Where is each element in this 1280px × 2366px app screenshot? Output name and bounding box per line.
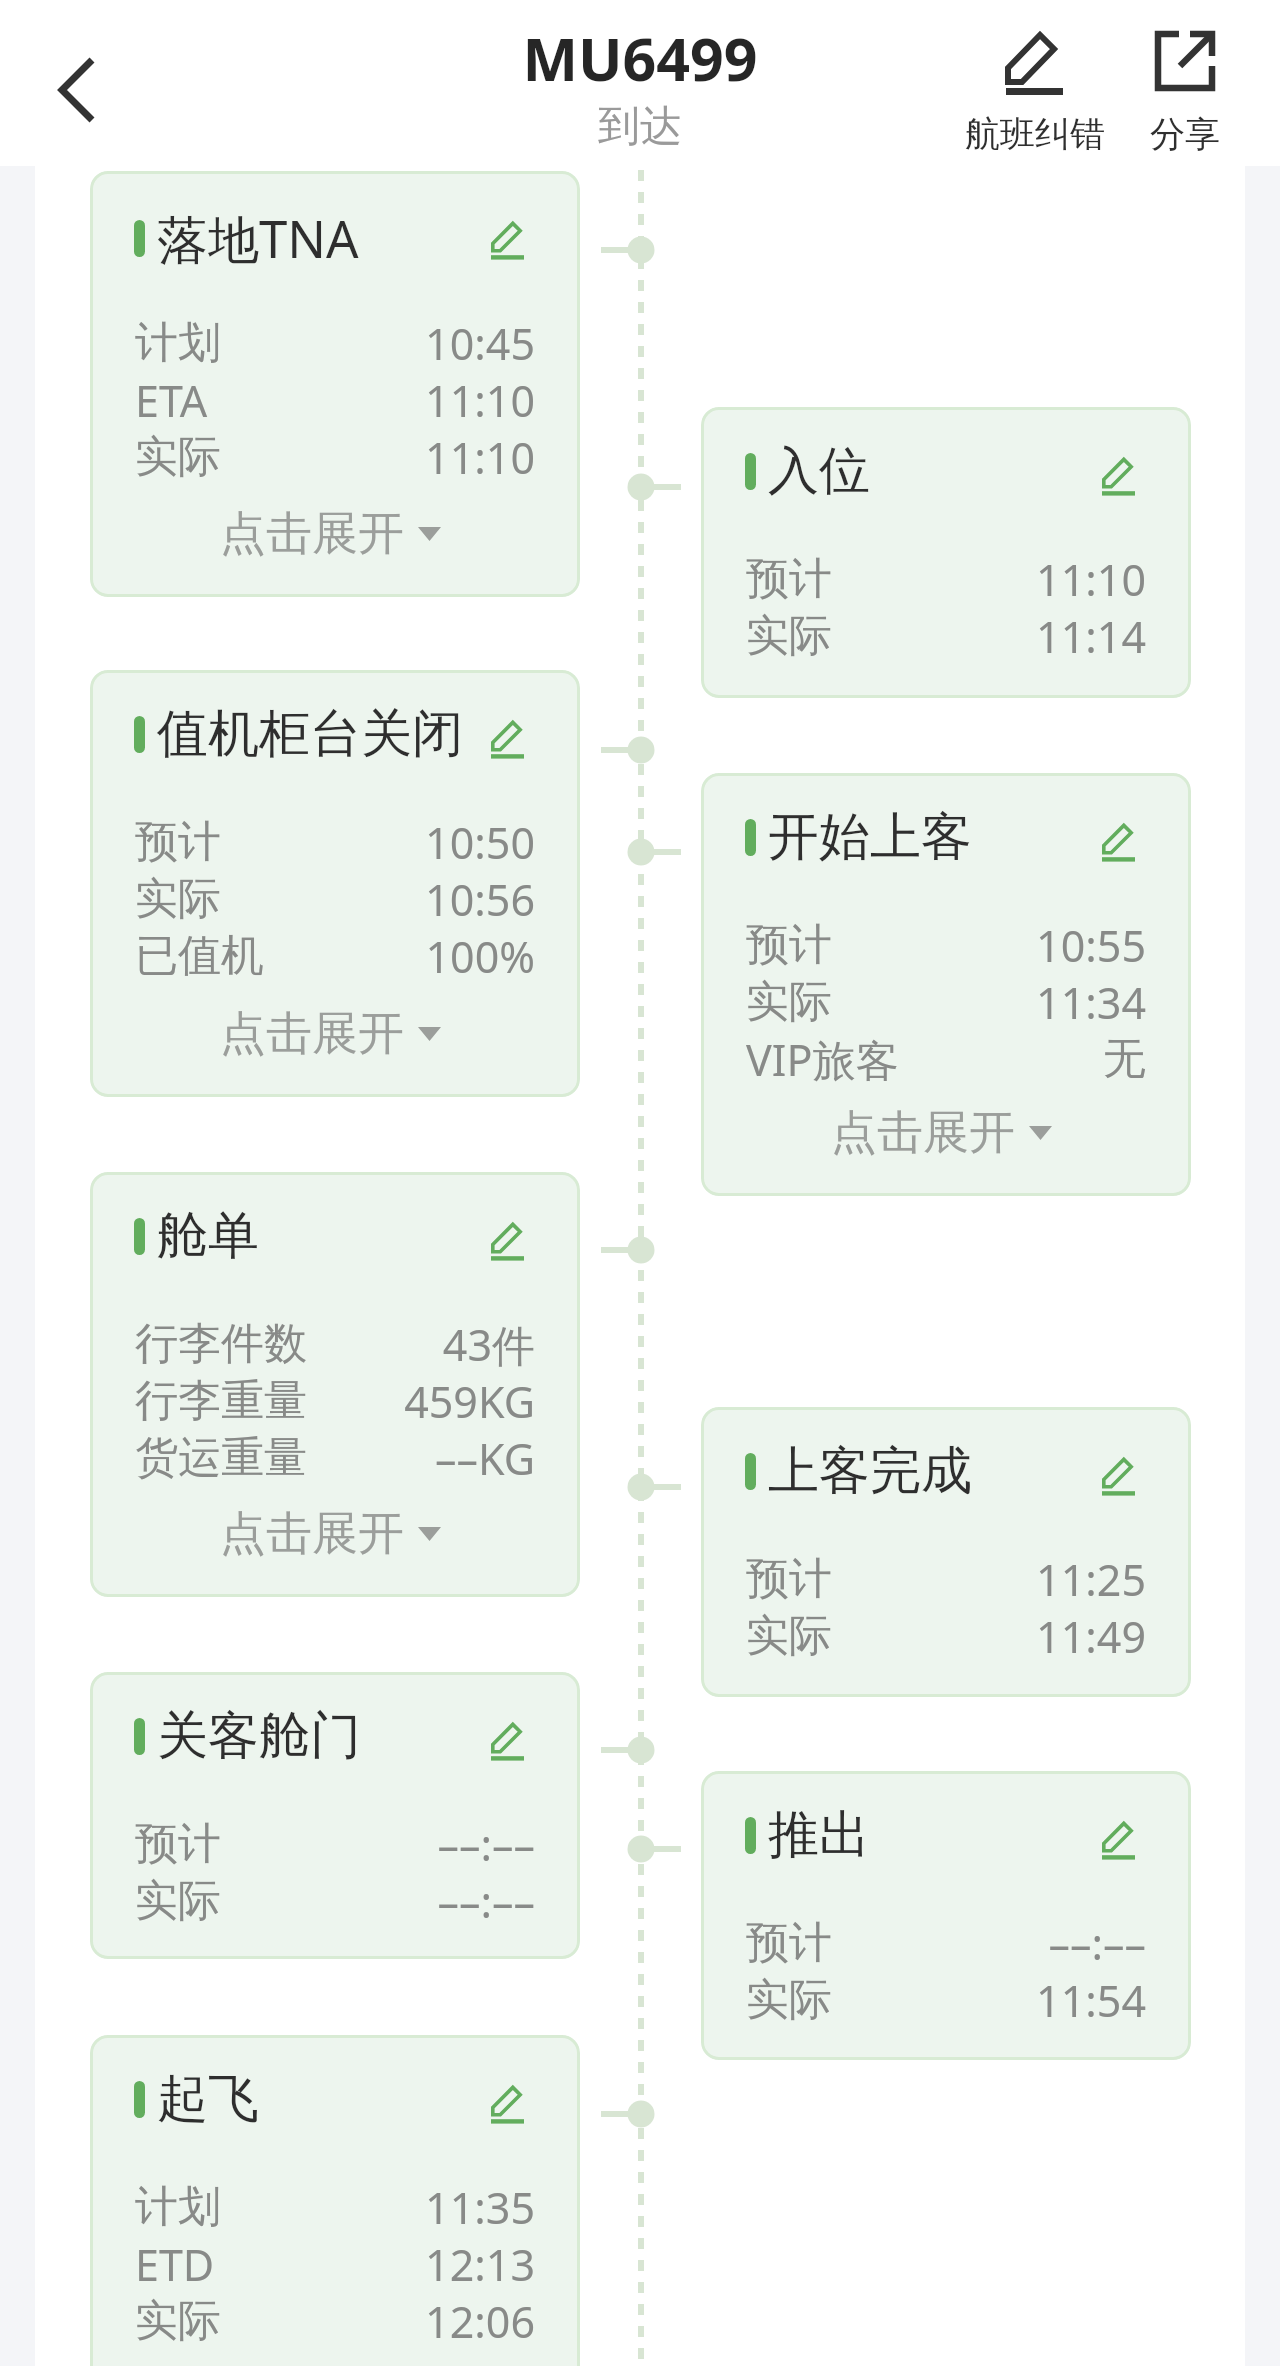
button[interactable]: 编辑 [1094, 1451, 1142, 1499]
staticText: 11:34 [840, 973, 1146, 1030]
staticText: 入位 [768, 439, 870, 503]
staticText: ––KG [315, 1429, 535, 1486]
staticText: 计划 [135, 2180, 221, 2234]
button[interactable]: 编辑 [483, 1716, 531, 1764]
staticText: 11:10 [216, 371, 535, 428]
button[interactable]: 编辑 [483, 1216, 531, 1264]
staticText: 10:50 [229, 813, 535, 870]
button[interactable]: 开始上客 [701, 773, 1191, 1196]
staticText: 行李件数 [135, 1317, 307, 1371]
staticText: 点击展开 [831, 1104, 1015, 1162]
button[interactable]: 编辑 [1094, 817, 1142, 865]
staticText: 100% [272, 927, 535, 984]
staticText: 预计 [135, 1817, 221, 1871]
staticText: 点击展开 [220, 1005, 404, 1063]
staticText: 上客完成 [768, 1439, 972, 1503]
staticText: 无 [907, 1032, 1146, 1086]
staticText: ––:–– [229, 1815, 535, 1872]
staticText: ––:–– [840, 1914, 1146, 1971]
staticText: 分享 [1125, 112, 1245, 156]
staticText: 12:06 [229, 2292, 535, 2349]
button[interactable]: 编辑 [483, 2079, 531, 2127]
staticText: 点击展开 [220, 1505, 404, 1563]
button[interactable]: 编辑 [1094, 1815, 1142, 1863]
staticText: 实际 [746, 1609, 832, 1663]
button[interactable]: 编辑 [483, 215, 531, 263]
staticText: VIP旅客 [746, 1030, 899, 1087]
staticText: 落地TNA [157, 203, 359, 273]
staticText: 11:10 [229, 428, 535, 485]
staticText: 起飞 [157, 2067, 259, 2131]
button[interactable]: 点击展开 [701, 1100, 1186, 1166]
staticText: 已值机 [135, 929, 264, 983]
button[interactable]: 上客完成 [701, 1407, 1191, 1697]
staticText: 459KG [315, 1372, 535, 1429]
button[interactable]: 分享 [1125, 4, 1245, 159]
button[interactable]: 落地TNA [90, 171, 580, 597]
staticText: 预计 [746, 552, 832, 606]
button[interactable]: 舱单 [90, 1172, 580, 1597]
button[interactable]: 推出 [701, 1771, 1191, 2060]
staticText: 预计 [746, 1552, 832, 1606]
staticText: 12:13 [223, 2235, 535, 2292]
staticText: 舱单 [157, 1204, 259, 1268]
staticText: 43件 [315, 1315, 535, 1372]
staticText: 实际 [135, 2294, 221, 2348]
staticText: 10:55 [840, 916, 1146, 973]
staticText: 值机柜台关闭 [157, 702, 463, 766]
staticText: 到达 [0, 100, 1280, 153]
staticText: 预计 [746, 1916, 832, 1970]
staticText: 11:10 [840, 550, 1146, 607]
button[interactable]: 点击展开 [90, 501, 575, 567]
button[interactable]: 编辑 [483, 714, 531, 762]
staticText: 11:54 [840, 1971, 1146, 2028]
staticText: MU6499 [0, 18, 1280, 98]
staticText: 推出 [768, 1803, 870, 1867]
staticText: 实际 [135, 872, 221, 926]
staticText: 关客舱门 [157, 1704, 361, 1768]
staticText: 11:35 [229, 2178, 535, 2235]
button[interactable]: 入位 [701, 407, 1191, 698]
button[interactable]: 值机柜台关闭 [90, 670, 580, 1097]
staticText: 实际 [135, 430, 221, 484]
button[interactable]: 起飞 [90, 2035, 580, 2366]
staticText: ––:–– [229, 1872, 535, 1929]
staticText: 实际 [746, 609, 832, 663]
staticText: 实际 [746, 975, 832, 1029]
staticText: 10:56 [229, 870, 535, 927]
button[interactable]: 点击展开 [90, 1501, 575, 1567]
staticText: 实际 [746, 1973, 832, 2027]
staticText: ETA [135, 371, 208, 428]
staticText: 11:25 [840, 1550, 1146, 1607]
button[interactable]: 点击展开 [90, 1001, 575, 1067]
staticText: 航班纠错 [947, 112, 1123, 156]
staticText: 点击展开 [220, 505, 404, 563]
button[interactable]: 航班纠错 [947, 4, 1123, 159]
staticText: ETD [135, 2235, 215, 2292]
staticText: 预计 [746, 918, 832, 972]
button[interactable]: 编辑 [1094, 451, 1142, 499]
staticText: 计划 [135, 316, 221, 370]
staticText: 实际 [135, 1874, 221, 1928]
staticText: 11:14 [840, 607, 1146, 664]
staticText: 11:49 [840, 1607, 1146, 1664]
staticText: 行李重量 [135, 1374, 307, 1428]
staticText: 货运重量 [135, 1431, 307, 1485]
staticText: 预计 [135, 815, 221, 869]
staticText: 开始上客 [768, 805, 972, 869]
staticText: 10:45 [229, 314, 535, 371]
button[interactable]: 关客舱门 [90, 1672, 580, 1959]
button[interactable]: Back [40, 48, 110, 132]
